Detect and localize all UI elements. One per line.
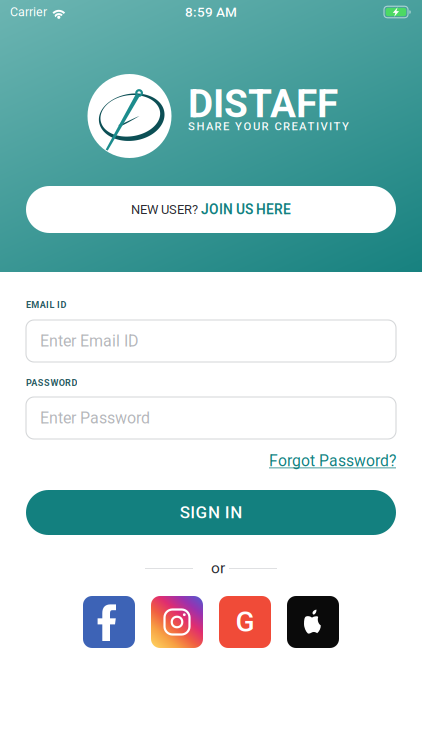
staticText: SIGN IN [180,502,242,522]
staticText: EMAIL ID [26,300,66,310]
staticText: 8:59 AM [185,4,237,20]
staticText: Forgot Password? [269,452,396,470]
button[interactable]: Sign in with Apple [287,596,339,648]
staticText: G [235,606,254,638]
staticText: Enter Password [40,409,150,427]
staticText: Enter Email ID [40,332,139,350]
staticText: or [211,559,225,577]
button[interactable]: NEW USER? [26,186,396,233]
staticText: NEW USER? [131,202,198,217]
staticText: JOIN US HERE [201,201,291,218]
button[interactable]: Sign in with Facebook [83,596,135,648]
button[interactable]: Forgot Password? [266,451,396,471]
button[interactable]: SIGN IN [26,490,396,535]
button[interactable]: Sign in with Google [219,596,271,648]
staticText: PASSWORD [26,378,77,388]
button[interactable]: Sign in with Instagram [151,596,203,648]
staticText: Carrier [10,5,47,19]
staticText: DISTAFF [188,81,338,127]
staticText: SHARE YOUR CREATIVITY [188,120,349,133]
